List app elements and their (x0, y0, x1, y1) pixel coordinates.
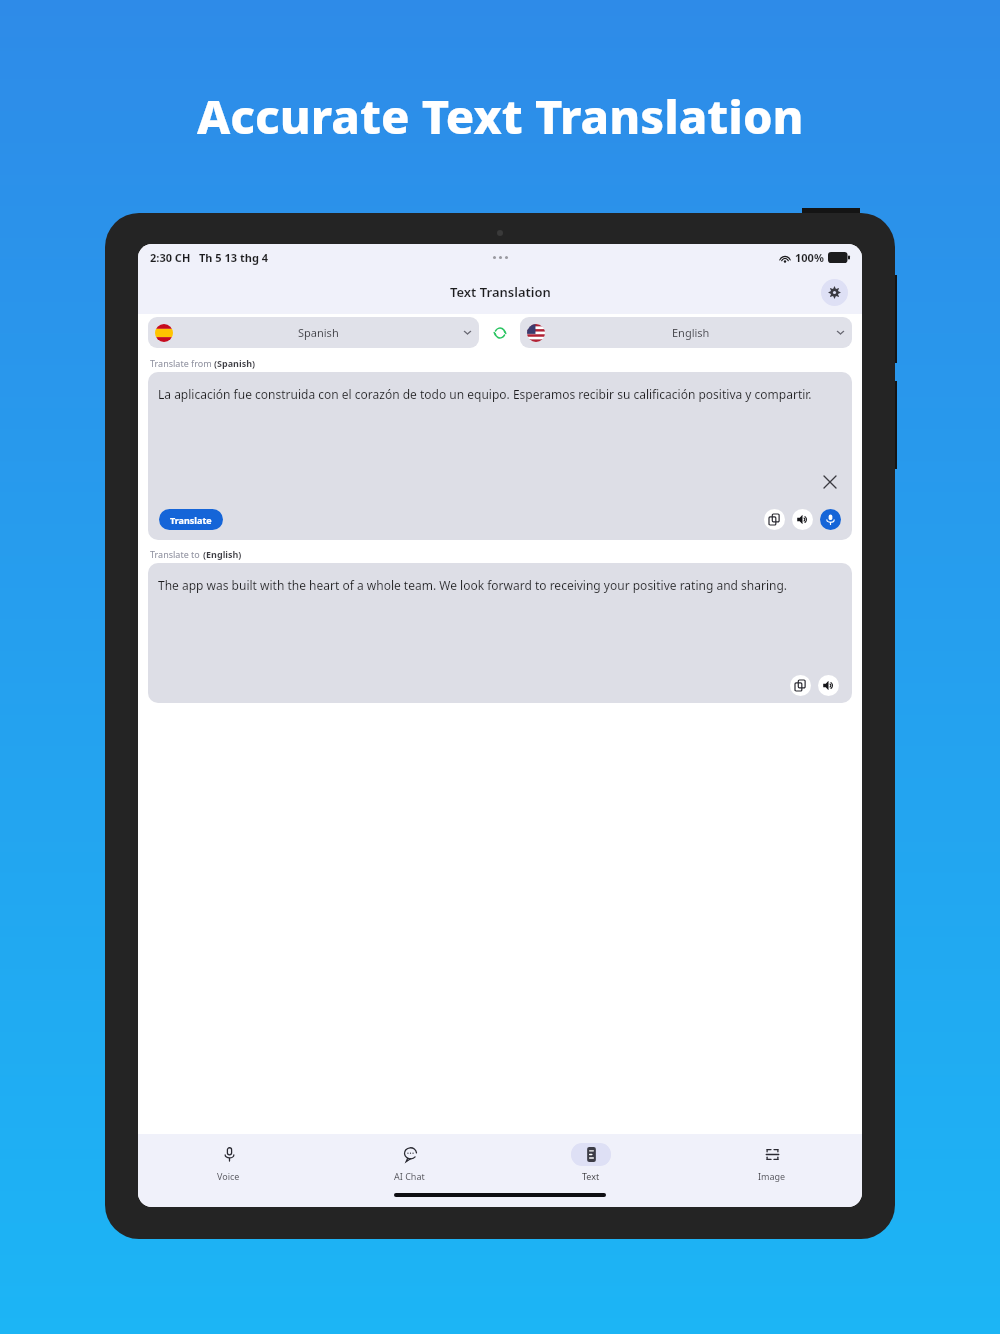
button[interactable]: Microphone (820, 509, 841, 530)
button[interactable]: Voice (138, 1143, 319, 1182)
button[interactable]: Clear text (820, 472, 840, 492)
staticText: Translate (170, 514, 212, 526)
button[interactable]: Translate (159, 509, 223, 530)
staticText: Voice (217, 1170, 240, 1182)
button[interactable]: Copy translation (790, 675, 811, 696)
staticText: Text Translation (450, 283, 551, 301)
button[interactable]: Speak (792, 509, 813, 530)
button[interactable]: Image (681, 1143, 862, 1182)
staticText: Translate to (150, 548, 203, 560)
staticText: Th 5 13 thg 4 (199, 250, 268, 265)
staticText: The app was built with the heart of a wh… (158, 577, 788, 593)
button[interactable]: Settings (821, 279, 848, 306)
staticText: 100% (795, 250, 824, 265)
button[interactable]: AI Chat (319, 1143, 500, 1182)
staticText: English (672, 325, 710, 340)
staticText: Image (758, 1170, 786, 1182)
button[interactable]: English (520, 317, 852, 348)
staticText: Accurate Text Translation (197, 84, 804, 148)
staticText: 2:30 CH (150, 250, 191, 265)
button[interactable]: Spanish (148, 317, 479, 348)
staticText: Spanish (298, 325, 339, 340)
button[interactable]: Copy (764, 509, 785, 530)
staticText: AI Chat (394, 1170, 425, 1182)
button[interactable]: Swap languages (486, 319, 513, 346)
staticText: (English) (203, 548, 242, 560)
staticText: La aplicación fue construida con el cora… (158, 386, 812, 402)
staticText: (Spanish) (214, 357, 256, 369)
staticText: Translate from (150, 357, 214, 369)
button[interactable]: Text (500, 1143, 681, 1182)
staticText: Text (582, 1170, 600, 1182)
button[interactable]: Speak translation (818, 675, 839, 696)
